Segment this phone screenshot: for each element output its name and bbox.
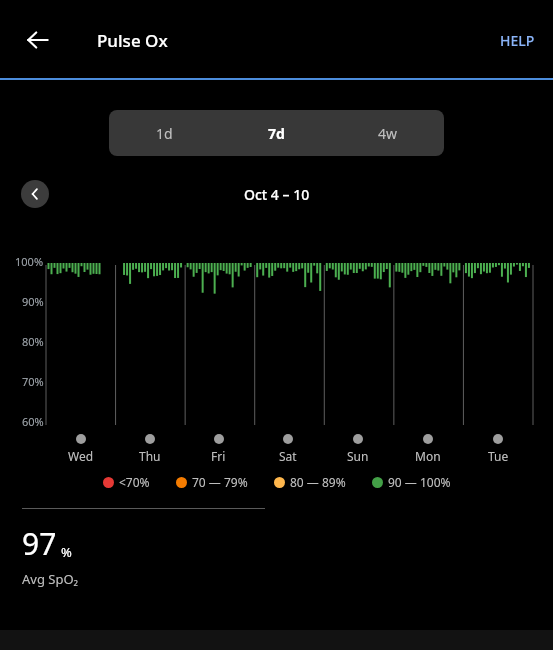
staticText: 80 — 89%	[290, 474, 346, 490]
staticText: 1d	[156, 124, 173, 143]
staticText: Thu	[139, 448, 161, 464]
staticText: 100%	[15, 254, 44, 268]
staticText: Fri	[211, 448, 226, 464]
staticText: 97	[22, 523, 57, 564]
staticText: Oct 4 – 10	[244, 185, 310, 204]
staticText: 7d	[268, 124, 285, 143]
staticText: HELP	[500, 31, 535, 50]
staticText: Sat	[279, 448, 297, 464]
staticText: <70%	[119, 474, 150, 490]
staticText: 90 — 100%	[388, 474, 451, 490]
button[interactable]: HELP	[490, 23, 545, 58]
staticText: 70 — 79%	[192, 474, 248, 490]
button[interactable]: Previous week	[21, 180, 49, 208]
staticText: 80%	[22, 334, 44, 348]
staticText: %	[61, 543, 72, 561]
staticText: Pulse Ox	[97, 29, 168, 52]
button[interactable]: 7d	[220, 110, 332, 156]
staticText: 70%	[22, 374, 44, 388]
staticText: Sun	[347, 448, 369, 464]
staticText: 90%	[22, 294, 44, 308]
staticText: Tue	[488, 448, 509, 464]
staticText: Avg SpO₂	[22, 570, 79, 588]
staticText: 60%	[22, 414, 44, 428]
staticText: Mon	[415, 448, 441, 464]
staticText: Wed	[68, 448, 94, 464]
staticText: 4w	[378, 124, 398, 143]
button[interactable]: 4w	[332, 110, 444, 156]
button[interactable]: 1d	[109, 110, 220, 156]
button[interactable]: Back	[14, 16, 62, 64]
